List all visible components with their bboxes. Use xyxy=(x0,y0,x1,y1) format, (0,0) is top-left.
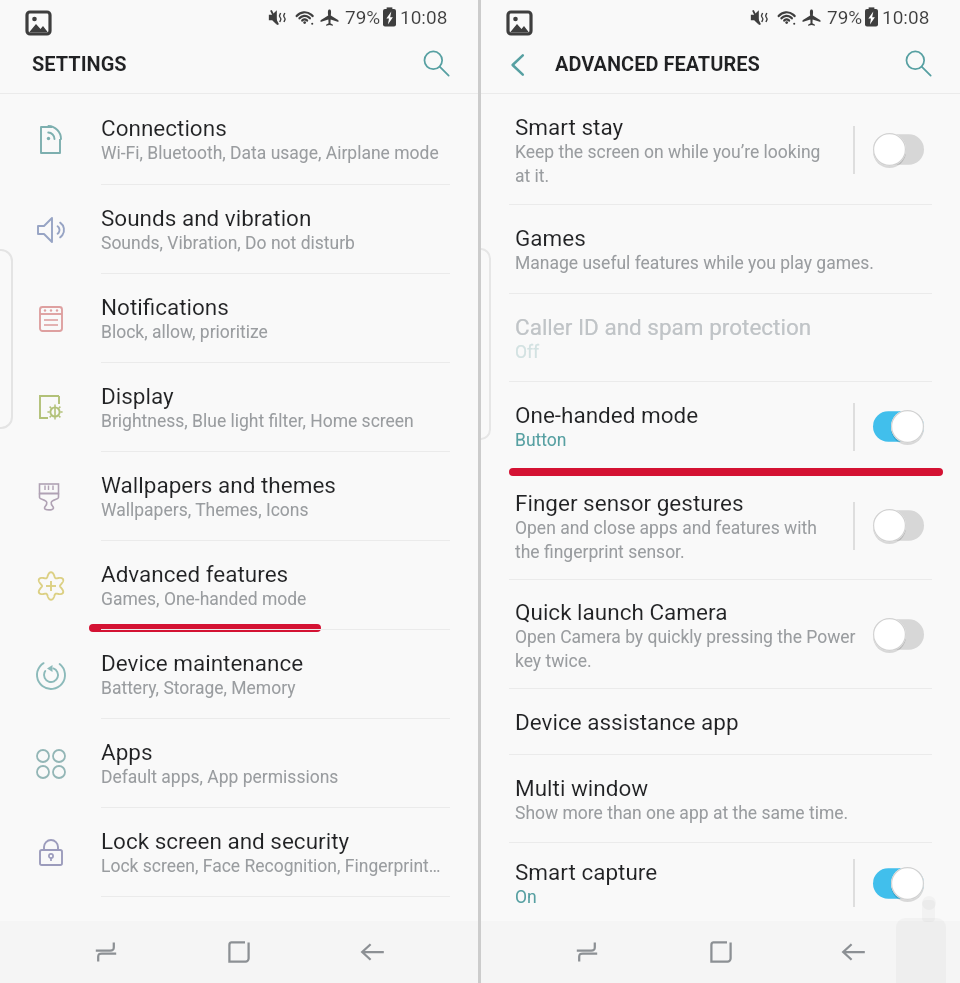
staticText: Battery, Storage, Memory xyxy=(101,678,296,699)
staticText: Wallpapers, Themes, Icons xyxy=(101,500,309,521)
staticText: Lock screen and security xyxy=(101,828,350,854)
button[interactable]: Back xyxy=(345,924,401,980)
button[interactable]: Quick launch Camera toggle xyxy=(854,580,924,689)
staticText: Lock screen, Face Recognition, Fingerpri… xyxy=(101,856,441,877)
staticText: Games, One-handed mode xyxy=(101,589,307,610)
staticText: Show more than one app at the same time. xyxy=(515,803,849,824)
staticText: SETTINGS xyxy=(32,52,127,75)
button[interactable]: Caller ID and spam protection xyxy=(481,294,960,382)
staticText: Finger sensor gestures xyxy=(515,490,744,516)
staticText: Smart stay xyxy=(515,114,624,140)
staticText: Open Camera by quickly pressing the Powe… xyxy=(515,627,856,671)
button[interactable]: Lock screen and security xyxy=(0,808,478,897)
staticText: 10:08 xyxy=(882,6,930,28)
button[interactable]: One-handed mode toggle xyxy=(854,382,924,471)
button[interactable]: Device assistance app xyxy=(481,689,960,755)
button[interactable]: Home xyxy=(211,924,267,980)
button[interactable]: Apps xyxy=(0,719,478,808)
button[interactable]: Multi window xyxy=(481,755,960,843)
staticText: Button xyxy=(515,430,567,451)
staticText: Multi window xyxy=(515,775,649,801)
button[interactable]: Connections xyxy=(0,94,478,185)
staticText: Wallpapers and themes xyxy=(101,472,336,498)
staticText: Device maintenance xyxy=(101,650,304,676)
button[interactable]: Wallpapers and themes xyxy=(0,452,478,541)
staticText: Caller ID and spam protection xyxy=(515,314,812,340)
staticText: On xyxy=(515,887,537,908)
staticText: Smart capture xyxy=(515,859,658,885)
staticText: Apps xyxy=(101,739,153,765)
button[interactable]: Finger sensor gestures xyxy=(481,471,960,580)
staticText: Quick launch Camera xyxy=(515,599,728,625)
staticText: Keep the screen on while you’re looking … xyxy=(515,142,821,186)
staticText: Notifications xyxy=(101,294,229,320)
button[interactable]: Back xyxy=(503,50,533,80)
staticText: Display xyxy=(101,383,174,409)
button[interactable]: Quick launch Camera xyxy=(481,580,960,689)
staticText: Block, allow, prioritize xyxy=(101,322,268,343)
staticText: Sounds and vibration xyxy=(101,205,312,231)
staticText: Advanced features xyxy=(101,561,289,587)
button[interactable]: Device maintenance xyxy=(0,630,478,719)
staticText: One-handed mode xyxy=(515,402,699,428)
staticText: Connections xyxy=(101,115,227,141)
staticText: Off xyxy=(515,342,540,363)
button[interactable]: Back xyxy=(826,924,882,980)
staticText: Sounds, Vibration, Do not disturb xyxy=(101,233,355,254)
staticText: Games xyxy=(515,225,586,251)
button[interactable]: Finger sensor gestures toggle xyxy=(854,471,924,580)
staticText: Wi-Fi, Bluetooth, Data usage, Airplane m… xyxy=(101,143,439,164)
button[interactable]: Notifications xyxy=(0,274,478,363)
button[interactable]: Recents xyxy=(78,924,134,980)
button[interactable]: Smart stay xyxy=(481,94,960,205)
staticText: 79% xyxy=(345,6,381,28)
staticText: Default apps, App permissions xyxy=(101,767,339,788)
staticText: Device assistance app xyxy=(515,709,739,735)
staticText: 79% xyxy=(827,6,863,28)
staticText: ADVANCED FEATURES xyxy=(555,52,760,75)
button[interactable]: Games xyxy=(481,205,960,294)
button[interactable]: Recents xyxy=(559,924,615,980)
button[interactable]: Advanced features xyxy=(0,541,478,630)
button[interactable]: Smart stay toggle xyxy=(854,94,924,205)
button[interactable]: Smart capture toggle xyxy=(854,843,924,921)
staticText: Open and close apps and features with th… xyxy=(515,518,817,562)
button[interactable]: One-handed mode xyxy=(481,382,960,471)
button[interactable]: Search xyxy=(422,49,451,78)
button[interactable]: Home xyxy=(693,924,749,980)
staticText: Brightness, Blue light filter, Home scre… xyxy=(101,411,414,432)
button[interactable]: Sounds and vibration xyxy=(0,185,478,274)
staticText: 10:08 xyxy=(400,6,448,28)
button[interactable]: Display xyxy=(0,363,478,452)
button[interactable]: Smart capture xyxy=(481,843,960,921)
button[interactable]: Search xyxy=(904,49,933,78)
staticText: Manage useful features while you play ga… xyxy=(515,253,874,274)
